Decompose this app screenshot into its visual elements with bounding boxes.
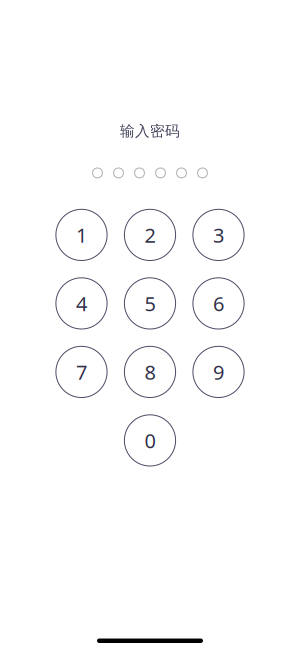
- button[interactable]: 7: [56, 346, 107, 397]
- button[interactable]: 3: [193, 209, 244, 260]
- staticText: 5: [144, 290, 155, 317]
- staticText: 3: [213, 222, 224, 248]
- button[interactable]: 4: [56, 278, 107, 329]
- button[interactable]: 6: [193, 278, 244, 329]
- staticText: 输入密码: [120, 122, 180, 140]
- staticText: 1: [76, 222, 87, 248]
- button[interactable]: 5: [124, 278, 176, 329]
- staticText: 8: [144, 359, 155, 385]
- staticText: 0: [144, 427, 155, 454]
- staticText: 7: [76, 359, 87, 385]
- button[interactable]: 9: [193, 346, 244, 397]
- staticText: 9: [213, 359, 224, 385]
- button[interactable]: 8: [124, 346, 176, 397]
- staticText: 4: [76, 290, 87, 317]
- button[interactable]: 0: [124, 415, 176, 466]
- staticText: 6: [213, 290, 224, 317]
- staticText: 2: [144, 222, 155, 248]
- button[interactable]: 2: [124, 209, 176, 260]
- button[interactable]: 1: [56, 209, 107, 260]
